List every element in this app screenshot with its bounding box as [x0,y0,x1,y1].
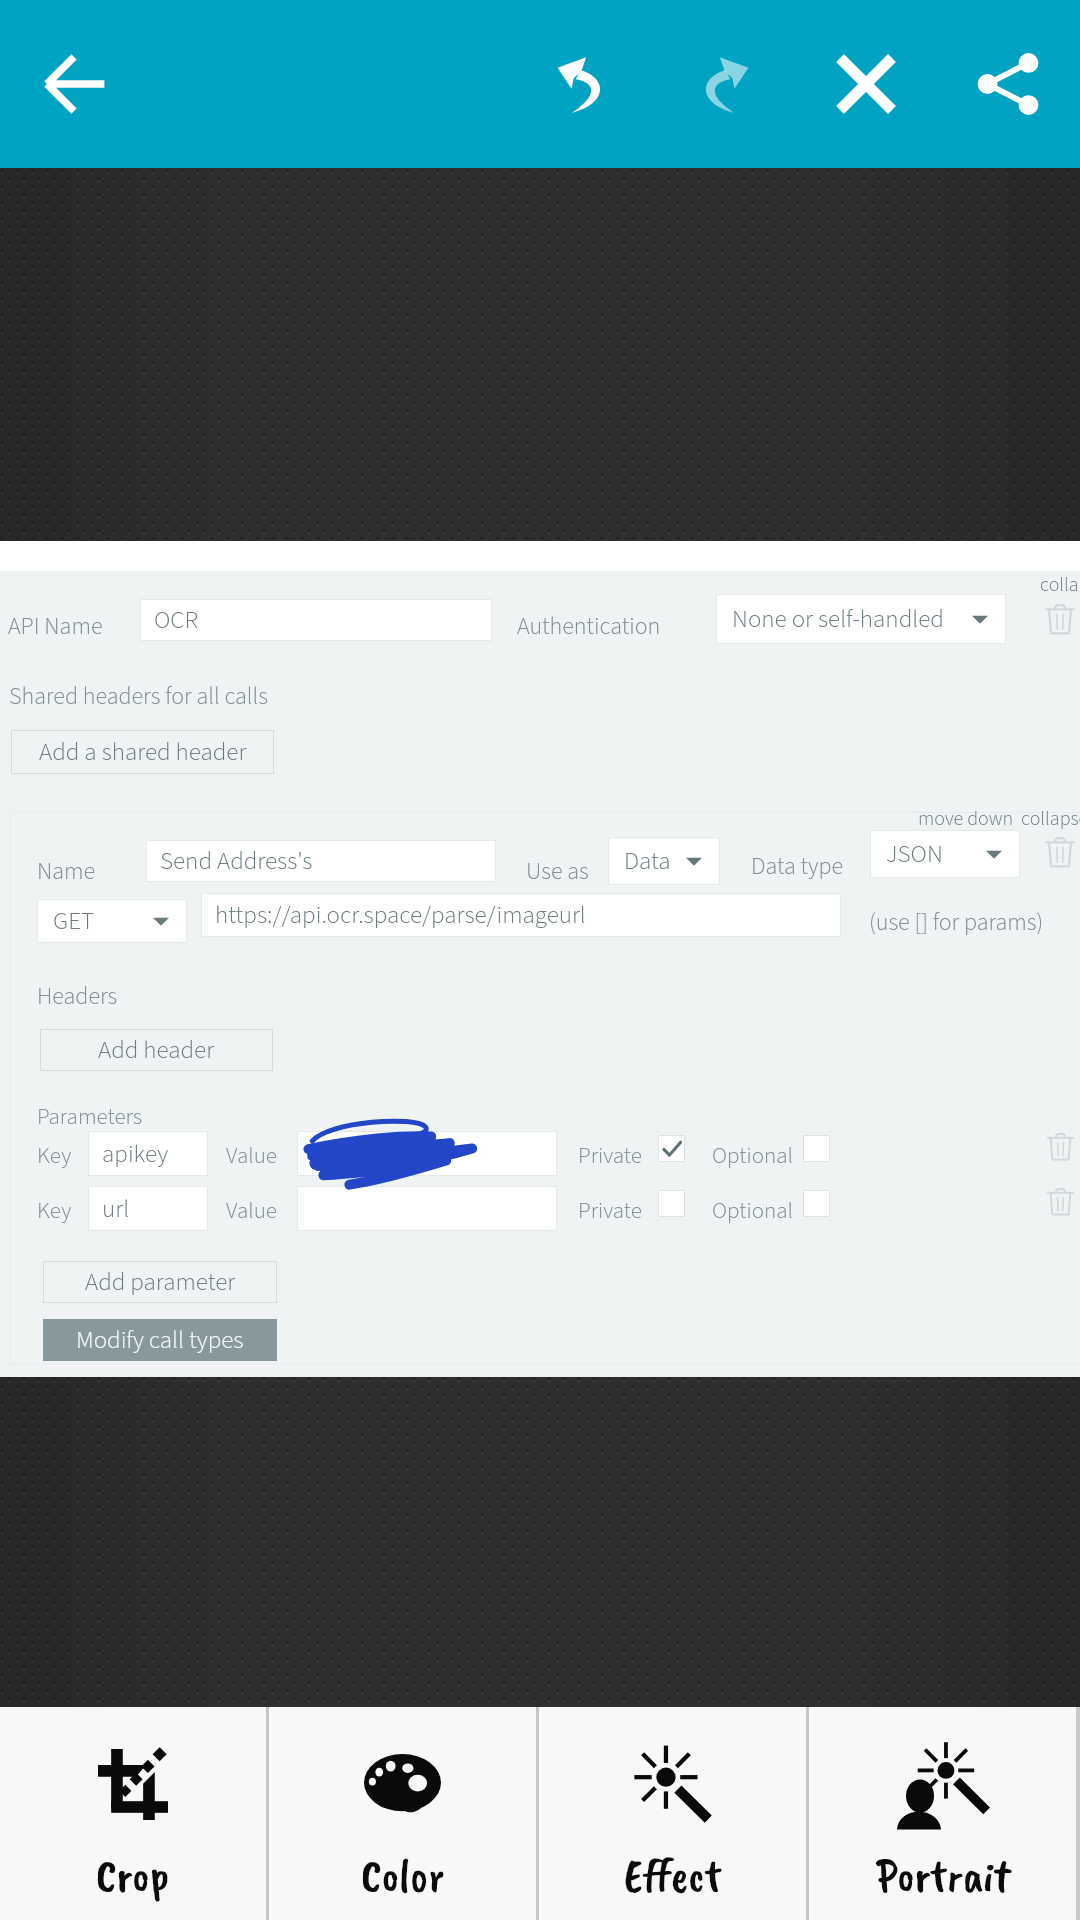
button[interactable]: Add header [40,1029,273,1071]
button[interactable]: Send Address's [146,840,496,882]
staticText: Effect [624,1847,722,1905]
button[interactable]: Effect [539,1707,806,1920]
staticText: Use as [526,854,589,888]
staticText: Shared headers for all calls [9,679,268,713]
button[interactable]: Add a shared header [11,730,274,774]
staticText: https://api.ocr.space/parse/imageurl [215,897,586,933]
staticText: Add a shared header [39,734,247,770]
button[interactable]: https://api.ocr.space/parse/imageurl [201,893,841,937]
button[interactable]: Share [937,13,1079,155]
staticText: Private [578,1139,642,1172]
staticText: Modify call types [76,1322,244,1358]
staticText: Color [361,1847,445,1905]
staticText: Private [578,1194,642,1227]
button[interactable]: url [88,1186,208,1231]
staticText: Data [624,843,671,879]
staticText: Crop [96,1847,170,1905]
staticText: API Name [8,609,103,643]
staticText: Add parameter [85,1264,236,1300]
staticText: collapse [1040,571,1080,599]
button[interactable]: Close [795,13,937,155]
button[interactable]: Add parameter [43,1261,277,1303]
staticText: None or self-handled [732,601,944,637]
staticText: Portrait [876,1847,1010,1905]
button[interactable]: Crop [0,1707,266,1920]
button[interactable]: OCR [140,599,492,641]
button[interactable]: JSON [870,830,1020,878]
button[interactable]: Toggle [803,1190,830,1217]
staticText: JSON [886,836,943,872]
staticText: Value [226,1139,277,1172]
button[interactable]: Toggle [658,1135,685,1162]
button[interactable]: GET [37,899,187,943]
button[interactable]: Portrait [809,1707,1076,1920]
staticText: Add header [98,1032,215,1068]
staticText: url [102,1191,130,1227]
staticText: Authentication [517,609,661,643]
staticText: Key [37,1139,72,1172]
button[interactable]: None or self-handled [716,594,1006,644]
button[interactable]: Toggle [658,1190,685,1217]
staticText: OCR [154,602,199,638]
button[interactable] [297,1186,557,1231]
button[interactable]: Toggle [803,1135,830,1162]
staticText: Parameters [37,1100,143,1133]
button[interactable]: apikey [88,1131,208,1176]
staticText: collapse [1021,805,1080,833]
staticText: apikey [102,1136,169,1172]
staticText: Value [226,1194,277,1227]
button[interactable]: Color [269,1707,536,1920]
button[interactable] [297,1131,557,1176]
staticText: Optional [712,1139,793,1172]
staticText: Headers [37,979,118,1013]
staticText: Name [37,854,96,888]
staticText: Send Address's [160,843,313,879]
button[interactable]: Back [20,28,132,140]
button[interactable]: Redo [653,13,795,155]
staticText: Data type [751,849,844,883]
button[interactable]: Data [608,837,720,885]
button[interactable]: Undo [511,13,653,155]
staticText: move down [918,805,1014,833]
button[interactable]: Modify call types [43,1319,277,1361]
staticText: GET [53,903,95,939]
staticText: Key [37,1194,72,1227]
staticText: Optional [712,1194,793,1227]
staticText: (use [] for params) [869,905,1044,939]
